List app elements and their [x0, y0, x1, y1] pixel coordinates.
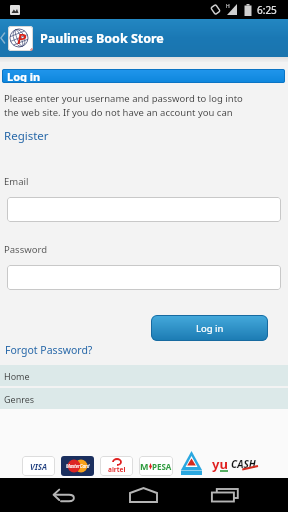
- staticText: Log in: [196, 322, 224, 335]
- button[interactable]: [7, 265, 281, 290]
- staticText: M: [140, 460, 149, 472]
- staticText: airtel: [108, 465, 126, 474]
- staticText: yu: [212, 455, 228, 473]
- button[interactable]: P: [0, 19, 288, 57]
- staticText: 6:25: [257, 3, 277, 17]
- staticText: Paulines Book Store: [40, 30, 164, 47]
- button[interactable]: [211, 478, 239, 512]
- staticText: Log in: [7, 69, 41, 83]
- staticText: MasterCard: [66, 463, 90, 469]
- staticText: CASH: [231, 457, 256, 471]
- staticText: Email: [4, 175, 29, 188]
- button[interactable]: Home: [0, 365, 288, 386]
- button[interactable]: Log in: [151, 315, 268, 341]
- staticText: VISA: [30, 461, 48, 472]
- button[interactable]: Register: [4, 128, 49, 144]
- staticText: Password: [4, 243, 47, 256]
- staticText: H: [226, 3, 230, 10]
- staticText: Please enter your username and password …: [4, 92, 243, 119]
- button[interactable]: Genres: [0, 388, 288, 409]
- button[interactable]: Forgot Password?: [5, 343, 93, 357]
- staticText: Genres: [4, 393, 35, 405]
- button[interactable]: [51, 478, 77, 512]
- button[interactable]: [129, 478, 158, 512]
- button[interactable]: [7, 197, 281, 222]
- staticText: PESA: [152, 461, 172, 472]
- staticText: Home: [4, 370, 30, 382]
- staticText: P: [17, 28, 27, 48]
